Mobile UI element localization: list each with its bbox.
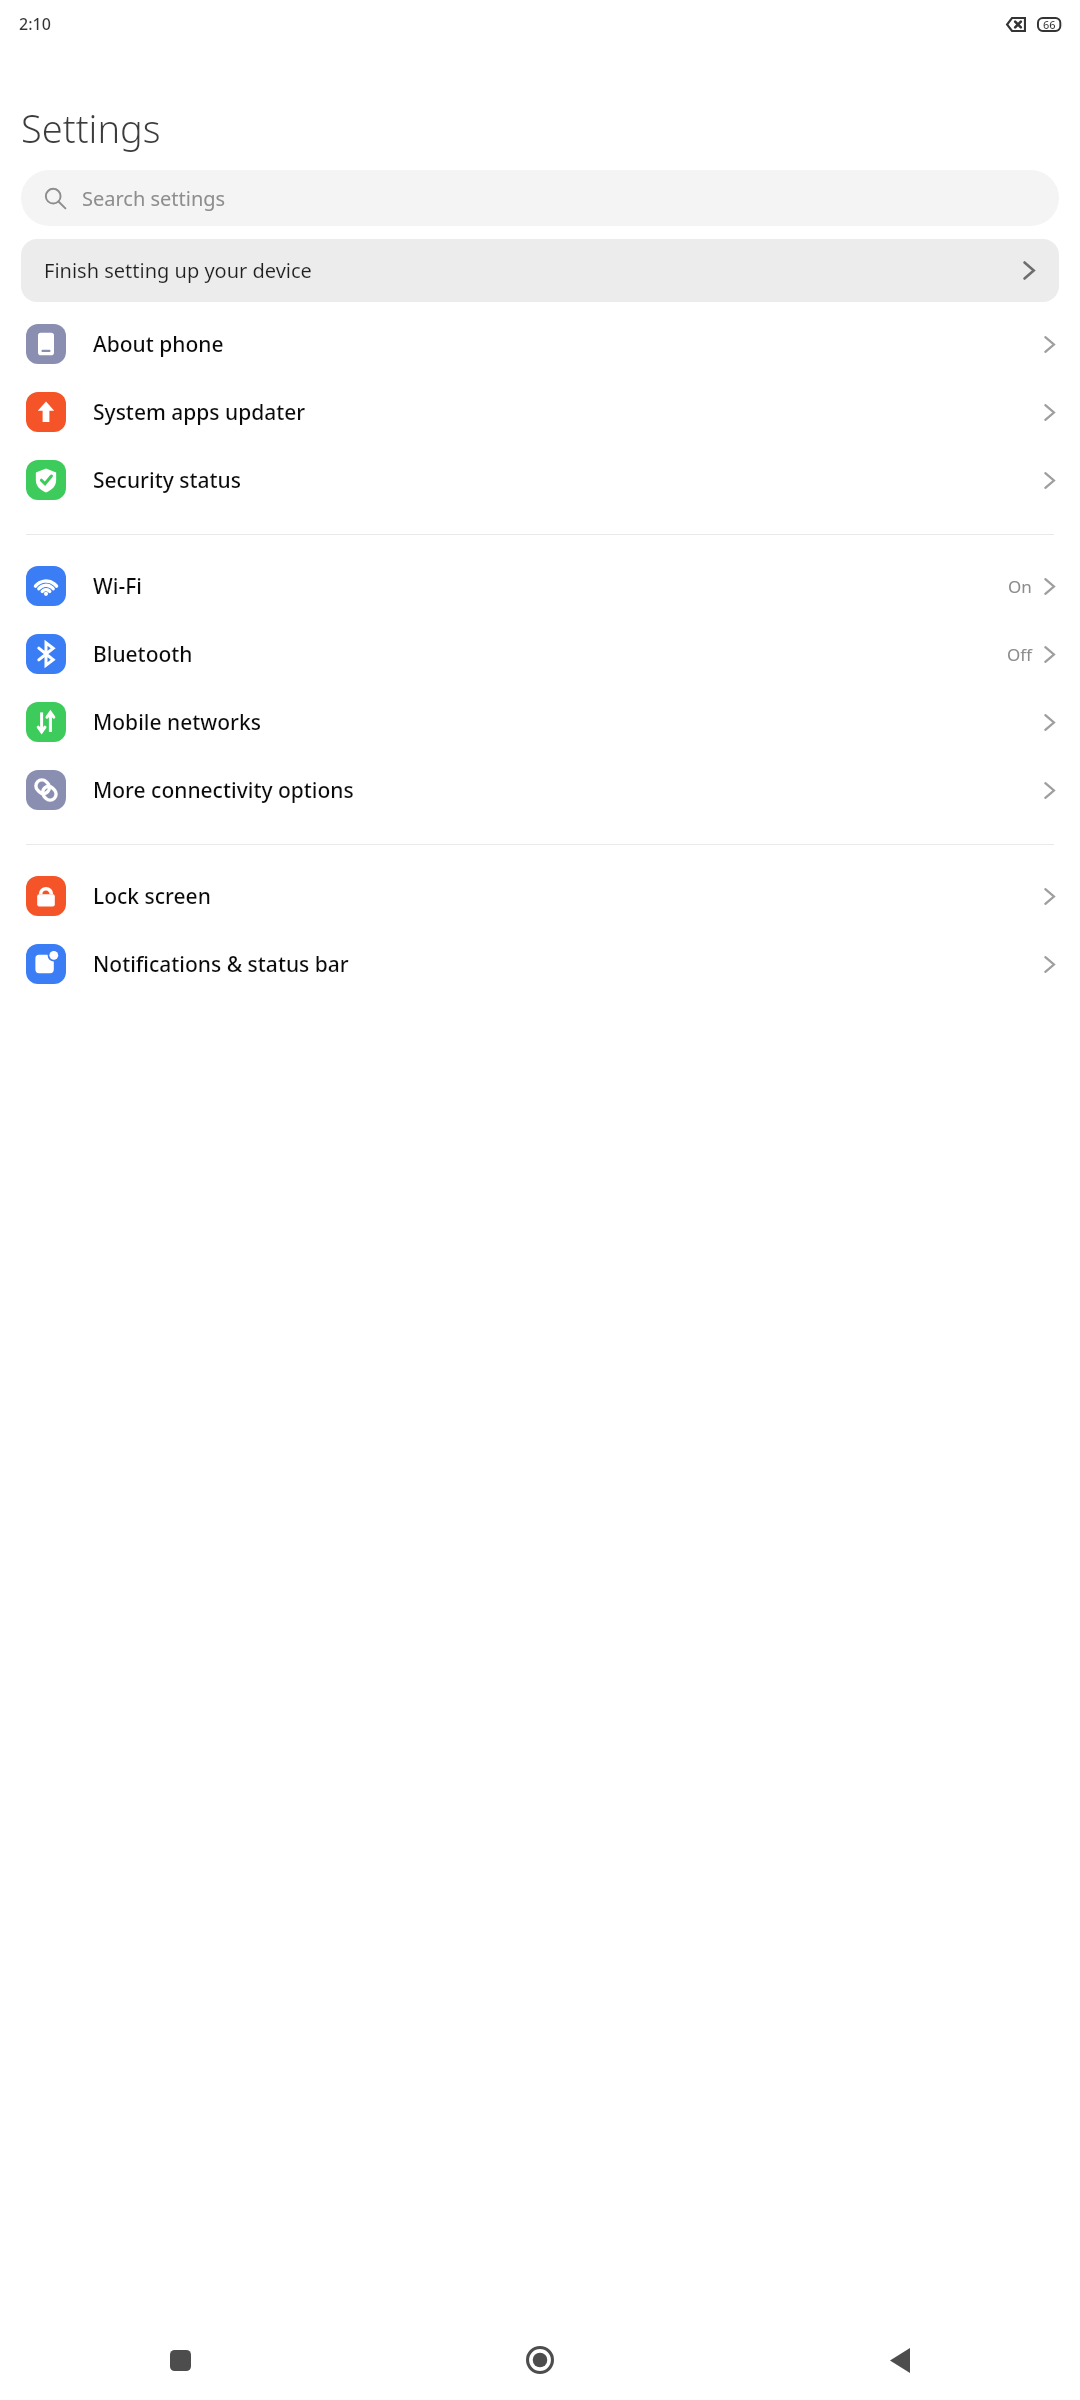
other: Security status: [26, 460, 66, 500]
other: Mobile networks: [26, 702, 66, 742]
staticText: Settings: [21, 102, 161, 154]
other: Lock screen: [26, 876, 66, 916]
button[interactable]: System apps updater: [0, 378, 1080, 446]
staticText: Wi-Fi: [93, 572, 1008, 601]
staticText: Security status: [93, 466, 1043, 495]
staticText: Lock screen: [93, 882, 1043, 911]
button[interactable]: Home: [360, 2320, 720, 2400]
staticText: 66: [1043, 17, 1056, 32]
button[interactable]: More connectivity: [0, 756, 1080, 824]
button[interactable]: Recent apps: [0, 2320, 360, 2400]
staticText: More connectivity options: [93, 776, 1043, 805]
button[interactable]: Mobile networks: [0, 688, 1080, 756]
button[interactable]: Wi-Fi: [0, 552, 1080, 620]
staticText: Mobile networks: [93, 708, 1043, 737]
staticText: Off: [1007, 643, 1032, 666]
other: System apps updater: [26, 392, 66, 432]
staticText: On: [1008, 575, 1032, 598]
button[interactable]: Security status: [0, 446, 1080, 514]
button[interactable]: Lock screen: [0, 862, 1080, 930]
other: Notifications: [26, 944, 66, 984]
staticText: System apps updater: [93, 398, 1043, 427]
other: More connectivity: [26, 770, 66, 810]
other: Wi-Fi: [26, 566, 66, 606]
button[interactable]: Search settings: [21, 170, 1059, 226]
button[interactable]: Bluetooth: [0, 620, 1080, 688]
staticText: Notifications & status bar: [93, 950, 1043, 979]
staticText: Search settings: [82, 185, 226, 212]
staticText: 2:10: [19, 13, 51, 35]
other: Bluetooth: [26, 634, 66, 674]
other: About phone: [26, 324, 66, 364]
staticText: Finish setting up your device: [44, 257, 312, 284]
staticText: About phone: [93, 330, 1043, 359]
button[interactable]: Back: [720, 2320, 1080, 2400]
button[interactable]: About phone: [0, 310, 1080, 378]
button[interactable]: Finish setting up your device: [21, 239, 1059, 302]
staticText: Bluetooth: [93, 640, 1007, 669]
button[interactable]: Notifications: [0, 930, 1080, 998]
